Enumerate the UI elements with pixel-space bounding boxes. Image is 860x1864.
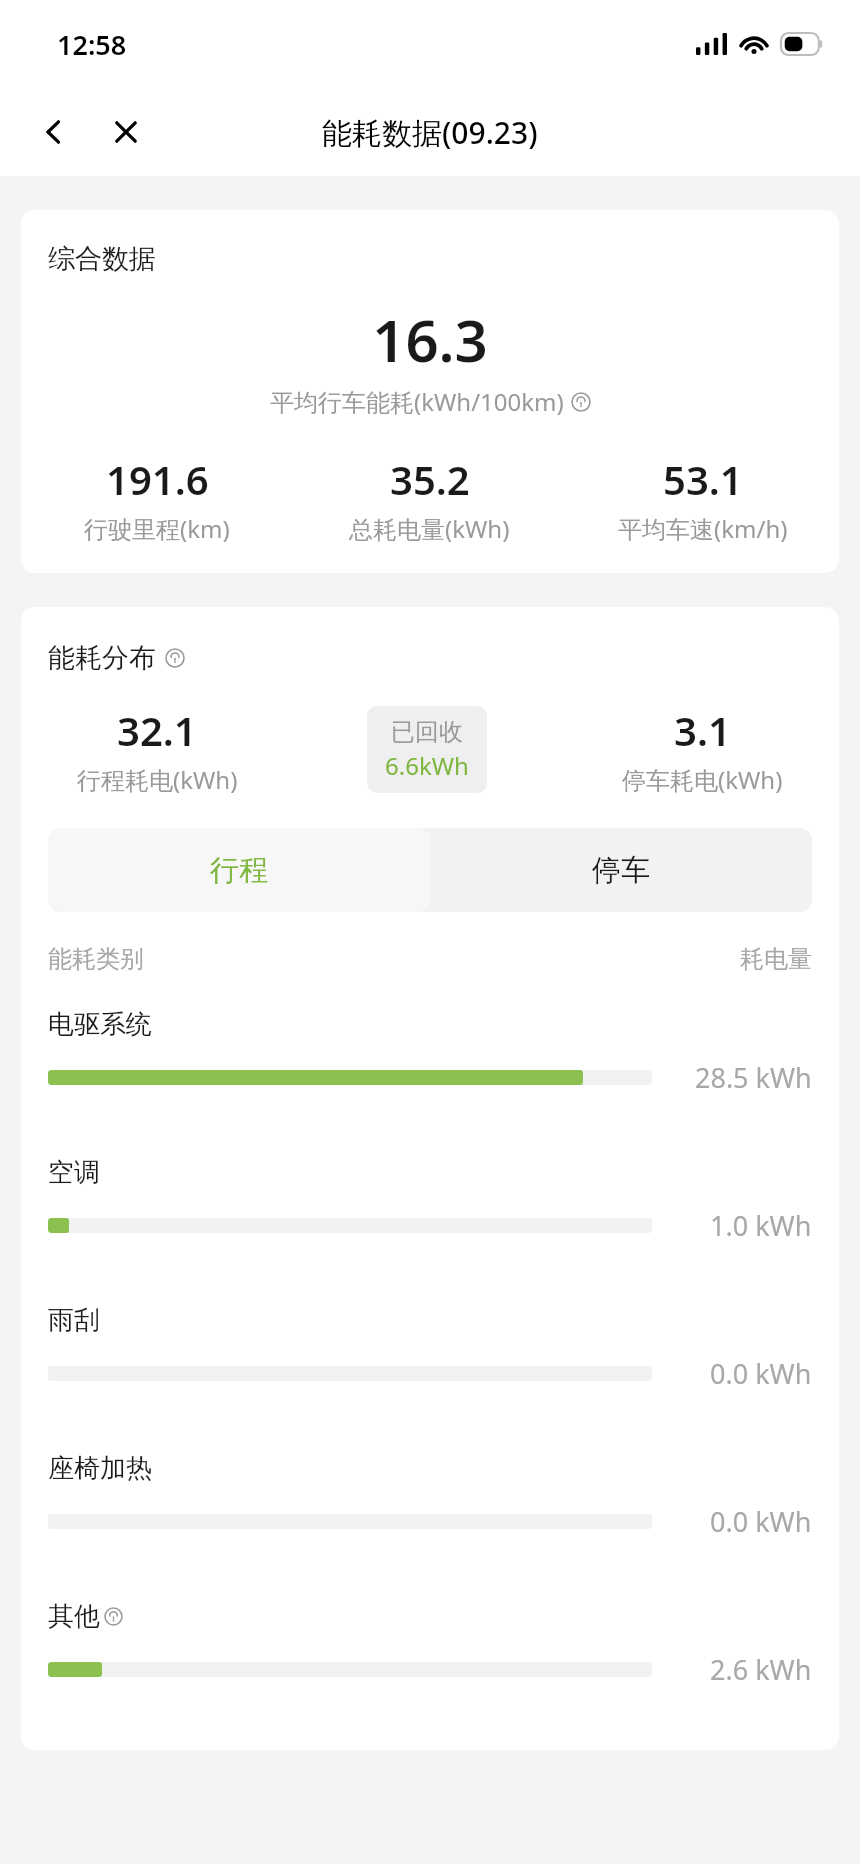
button[interactable]: 停车: [430, 828, 812, 912]
staticText: 行驶里程(km): [84, 512, 230, 545]
staticText: 35.2: [390, 452, 470, 506]
staticText: 53.1: [663, 452, 743, 506]
button[interactable]: 雨刮: [21, 1296, 839, 1444]
staticText: 停车: [592, 852, 650, 889]
staticText: 停车耗电(kWh): [622, 763, 783, 796]
staticText: 能耗类别: [48, 944, 144, 974]
staticText: 座椅加热: [48, 1452, 152, 1485]
staticText: 已回收: [391, 717, 463, 747]
button[interactable]: Close: [98, 104, 154, 160]
staticText: 综合数据: [48, 242, 156, 276]
staticText: 平均行车能耗(kWh/100km): [270, 385, 564, 418]
staticText: 1.0 kWh: [710, 1207, 812, 1244]
staticText: 能耗数据(09.23): [322, 112, 538, 153]
staticText: 总耗电量(kWh): [349, 512, 510, 545]
staticText: 0.0 kWh: [710, 1355, 812, 1392]
staticText: 16.3: [21, 300, 839, 379]
staticText: 能耗分布: [48, 641, 156, 675]
staticText: 行程耗电(kWh): [77, 763, 238, 796]
staticText: 3.1: [674, 703, 731, 757]
staticText: 191.6: [106, 452, 209, 506]
staticText: 6.6kWh: [385, 749, 469, 782]
staticText: 其他: [48, 1600, 100, 1633]
button[interactable]: 座椅加热: [21, 1444, 839, 1592]
staticText: 空调: [48, 1156, 100, 1189]
staticText: 行程: [210, 852, 268, 889]
staticText: 12:58: [57, 26, 127, 63]
staticText: 平均车速(km/h): [618, 512, 788, 545]
button[interactable]: 空调: [21, 1148, 839, 1296]
staticText: 电驱系统: [48, 1008, 152, 1041]
staticText: 雨刮: [48, 1304, 100, 1337]
button[interactable]: Back: [26, 104, 82, 160]
staticText: 耗电量: [740, 944, 812, 974]
staticText: 32.1: [117, 703, 197, 757]
staticText: 2.6 kWh: [710, 1651, 812, 1688]
button[interactable]: 行程: [48, 828, 430, 912]
staticText: 28.5 kWh: [695, 1059, 812, 1096]
button[interactable]: 电驱系统: [21, 1000, 839, 1148]
staticText: 0.0 kWh: [710, 1503, 812, 1540]
button[interactable]: 其他: [21, 1592, 839, 1740]
